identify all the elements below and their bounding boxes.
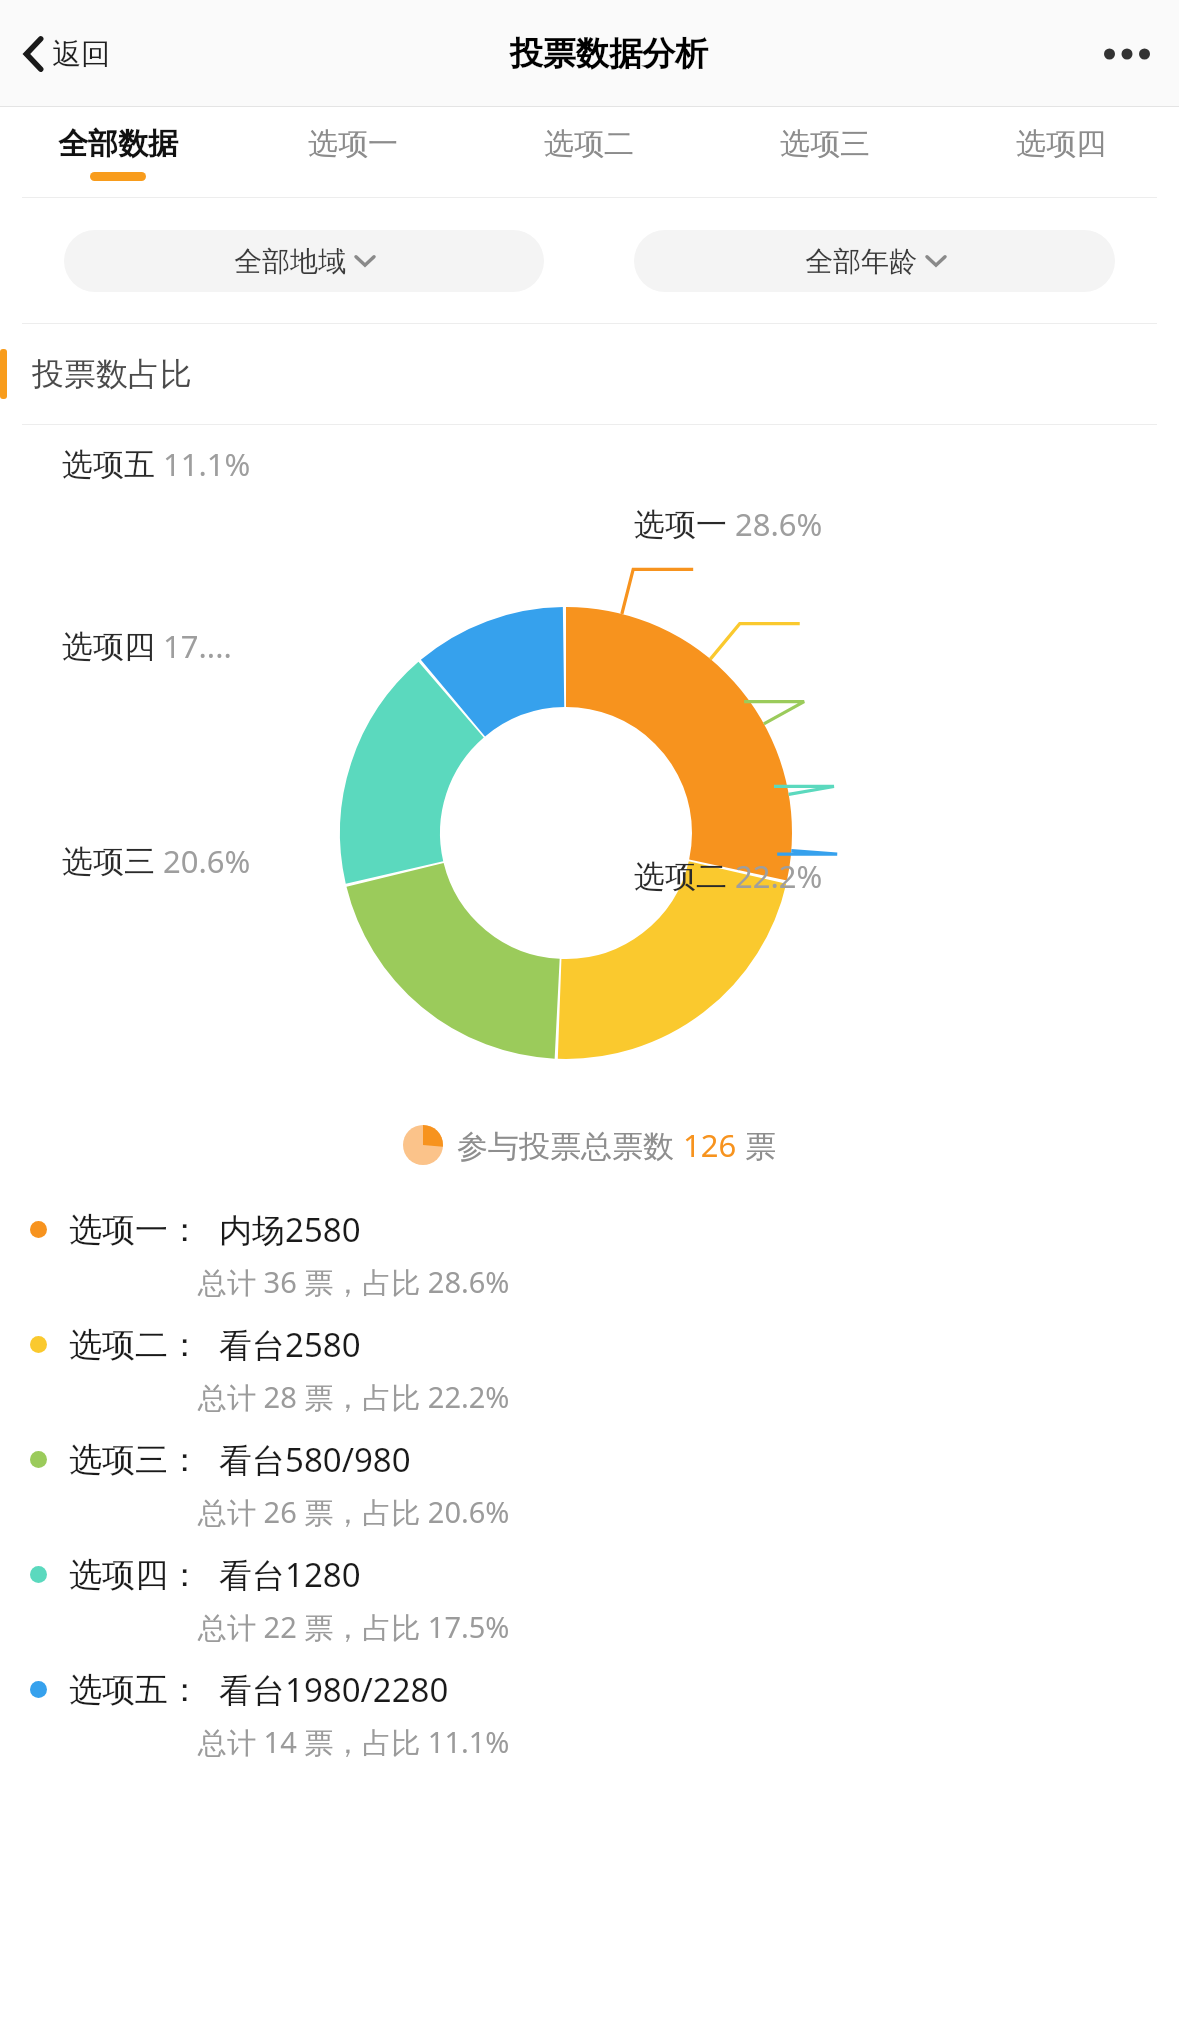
staticText: 选项一 [308,125,398,163]
staticText: 选项四： [69,1554,201,1596]
staticText: 选项五 [62,445,155,484]
staticText: 126 [683,1124,737,1166]
staticText: 返回 [52,36,110,73]
staticText: 选项二 [634,857,727,896]
staticText: 28.6% [727,503,823,545]
staticText: 17.... [155,625,232,667]
staticText: 全部数据 [58,125,178,163]
staticText: 选项五： [69,1669,201,1711]
button[interactable]: 选项一 [235,107,471,197]
staticText: 选项四 [1016,125,1106,163]
staticText: 选项四 [62,627,155,666]
staticText: 总计 22 票，占比 17.5% [198,1607,510,1647]
button[interactable]: 选项一： [0,1201,1179,1316]
staticText: 看台1280 [219,1552,361,1597]
staticText: 看台2580 [219,1322,361,1367]
staticText: 总计 26 票，占比 20.6% [198,1492,510,1532]
staticText: 总计 36 票，占比 28.6% [198,1262,510,1302]
button[interactable]: 全部数据 [0,107,235,197]
staticText: 选项三： [69,1439,201,1481]
button[interactable]: 全部年龄 [634,230,1115,292]
staticText: 内场2580 [219,1207,361,1252]
button[interactable]: 选项五： [0,1661,1179,1776]
staticText: 选项一： [69,1209,201,1251]
staticText: 11.1% [155,443,251,485]
staticText: 总计 28 票，占比 22.2% [198,1377,510,1417]
button[interactable]: 选项四： [0,1546,1179,1661]
button[interactable]: 选项四 [943,107,1179,197]
staticText: 选项二： [69,1324,201,1366]
button[interactable]: 全部地域 [64,230,544,292]
button[interactable]: 选项三 [707,107,943,197]
staticText: 看台580/980 [219,1437,411,1482]
staticText: 全部年龄 [805,244,917,279]
staticText: 参与投票总票数 [457,1124,683,1166]
staticText: 票 [737,1124,777,1166]
staticText: 选项二 [544,125,634,163]
staticText: 看台1980/2280 [219,1667,449,1712]
staticText: 投票数占比 [32,354,192,394]
staticText: 总计 14 票，占比 11.1% [198,1722,510,1762]
button[interactable]: 选项二： [0,1316,1179,1431]
staticText: 选项一 [634,505,727,544]
staticText: 投票数据分析 [510,33,708,75]
button[interactable]: 返回 [22,34,122,74]
button[interactable]: 选项三： [0,1431,1179,1546]
staticText: 选项三 [780,125,870,163]
staticText: 20.6% [155,840,251,882]
staticText: 全部地域 [234,244,346,279]
staticText: 22.2% [727,855,823,897]
button[interactable]: More options [1097,24,1157,84]
button[interactable]: 选项二 [471,107,707,197]
staticText: 选项三 [62,842,155,881]
